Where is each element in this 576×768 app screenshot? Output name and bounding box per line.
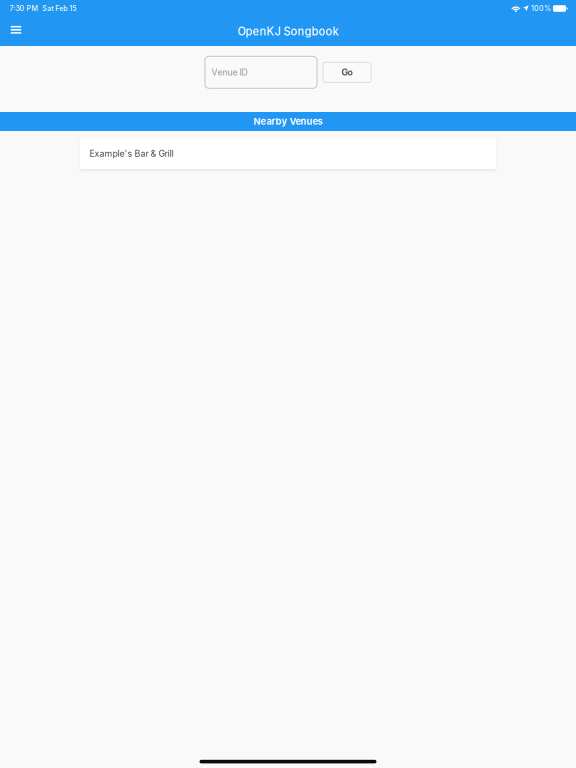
- staticText: Venue ID: [212, 67, 248, 78]
- staticText: 7:30 PM: [9, 4, 37, 13]
- staticText: Go: [341, 67, 352, 78]
- button[interactable]: Menu: [0, 17, 33, 46]
- staticText: Sat Feb 15: [42, 4, 76, 13]
- staticText: Nearby Venues: [253, 116, 322, 127]
- staticText: 100%: [531, 4, 551, 13]
- staticText: Example's Bar & Grill: [89, 148, 173, 159]
- staticText: OpenKJ Songbook: [237, 25, 338, 38]
- button[interactable]: Example's Bar & Grill: [79, 138, 496, 169]
- button[interactable]: Go: [323, 56, 371, 82]
